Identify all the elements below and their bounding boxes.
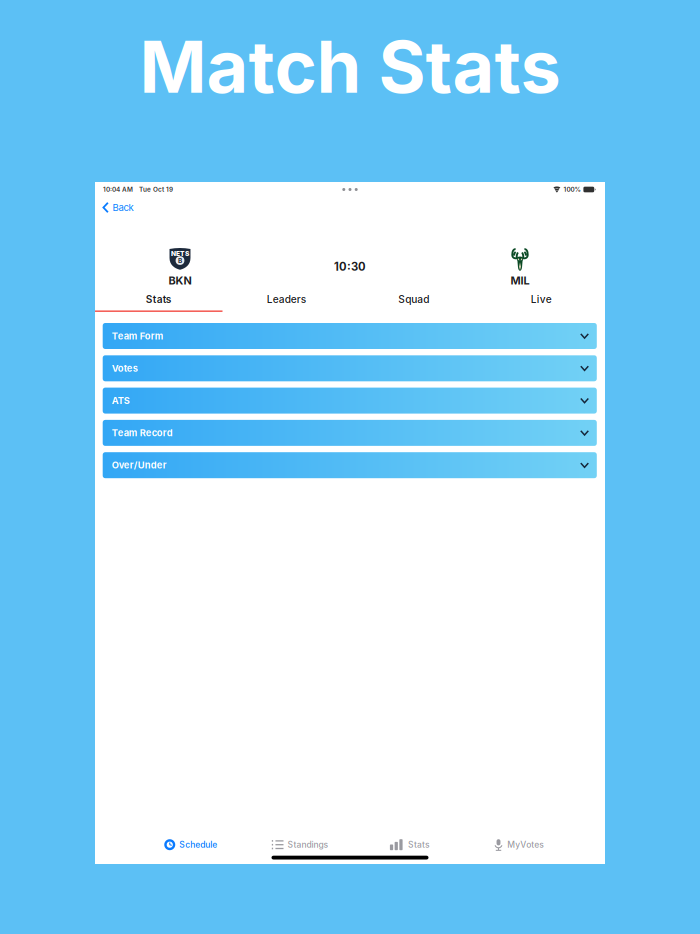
button[interactable]: Standings [245,834,355,856]
button[interactable]: MyVotes [464,834,574,856]
button[interactable]: Votes [103,355,597,381]
staticText: Team Record [112,427,173,439]
staticText: NETS [171,250,189,258]
staticText: Over/Under [112,460,167,471]
button[interactable]: Leaders [222,288,350,312]
staticText: Leaders [267,293,306,305]
staticText: MIL [510,274,529,287]
button[interactable]: Squad [350,288,477,312]
button[interactable]: Schedule [136,834,245,856]
staticText: Match Stats [139,23,560,110]
staticText: 10:30 [334,260,366,273]
staticText: ATS [112,395,130,406]
staticText: B [178,257,182,264]
button[interactable]: Stats [355,834,464,856]
button[interactable]: ATS [103,388,597,414]
button[interactable]: Over/Under [103,452,597,478]
button[interactable]: Stats [95,288,222,312]
staticText: Schedule [179,839,217,850]
staticText: Standings [287,839,328,850]
staticText: 100% [563,186,580,193]
staticText: Team Form [112,330,164,342]
staticText: Live [531,293,552,305]
staticText: MyVotes [507,839,544,850]
staticText: Votes [112,363,138,374]
button[interactable]: Back [95,197,140,217]
staticText: Back [112,202,133,213]
staticText: Squad [398,293,429,305]
staticText: Stats [408,839,430,850]
button[interactable]: Team Record [103,420,597,446]
staticText: BKN [168,274,191,287]
button[interactable]: Team Form [103,323,597,349]
staticText: 10:04 AM Tue Oct 19 [103,186,173,193]
staticText: Stats [146,293,172,305]
button[interactable]: Live [477,288,605,312]
